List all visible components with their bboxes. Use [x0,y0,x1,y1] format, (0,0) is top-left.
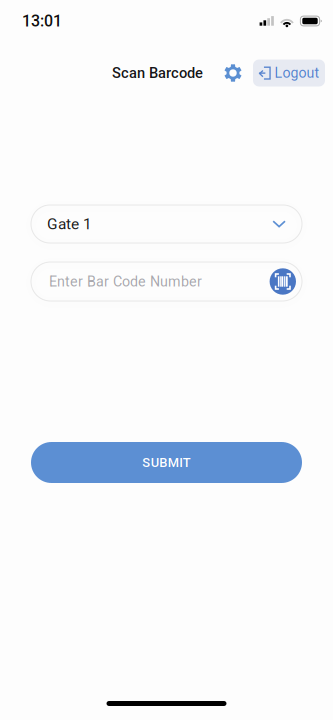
button[interactable]: Settings [203,58,253,88]
button[interactable]: SUBMIT [31,442,302,483]
button[interactable]: Gate 1 [31,205,302,243]
button[interactable]: Scan barcode [270,268,296,295]
staticText: SUBMIT [142,455,191,470]
staticText: 13:01 [22,12,62,30]
staticText: Gate 1 [47,215,92,233]
staticText: Logout [274,65,319,81]
staticText: Enter Bar Code Number [49,273,202,290]
button[interactable]: Logout [253,59,325,86]
staticText: Scan Barcode [112,64,203,82]
